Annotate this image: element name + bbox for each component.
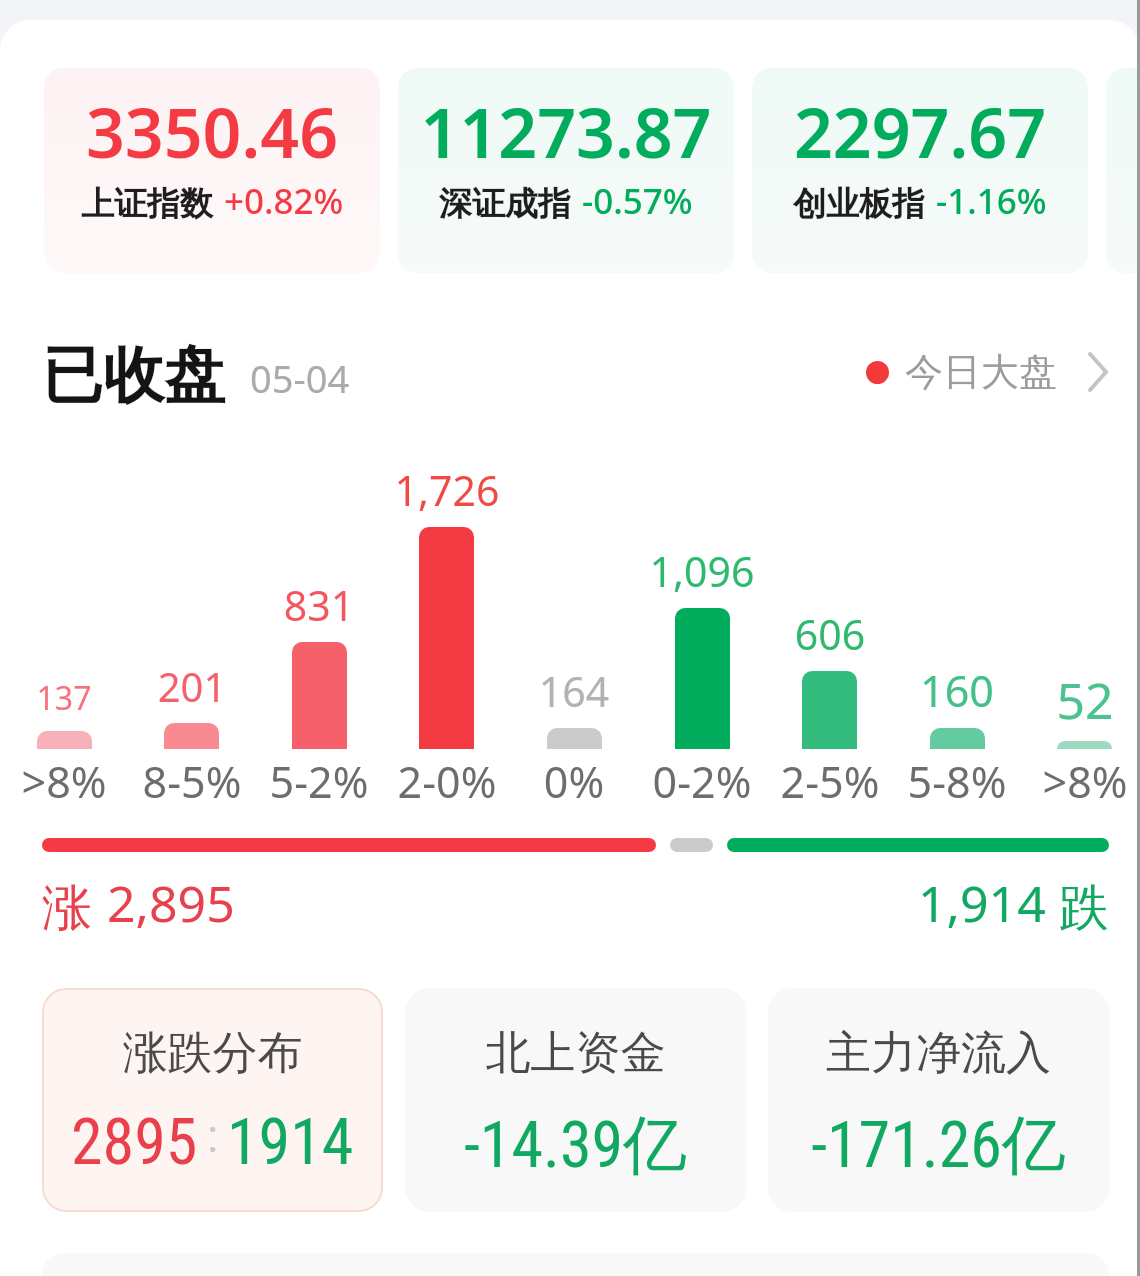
staticText: 涨 (42, 877, 92, 940)
staticText: -0.57% (582, 177, 693, 225)
staticText: 1914 (227, 1105, 354, 1180)
button[interactable] (1106, 68, 1140, 273)
staticText: 160 (882, 661, 1032, 720)
staticText: >8% (1010, 752, 1140, 811)
button[interactable]: 北上资金 (405, 988, 746, 1212)
staticText: 1,914 (918, 869, 1046, 937)
staticText: 主力净流入 (768, 1025, 1109, 1082)
staticText: 0% (499, 752, 649, 811)
staticText: 1,096 (627, 543, 777, 599)
staticText: : (207, 1109, 218, 1163)
staticText: 5-8% (882, 752, 1032, 811)
other: 今日大盘 (1088, 352, 1108, 392)
staticText: 831 (244, 577, 394, 633)
staticText: +0.82% (224, 177, 344, 225)
button[interactable]: 今日大盘 (866, 347, 1108, 397)
button[interactable]: 2297.67 (752, 68, 1088, 273)
button[interactable]: 涨跌分布 (42, 988, 383, 1212)
staticText: 2297.67 (752, 85, 1088, 178)
staticText: 2-0% (372, 752, 522, 811)
staticText: 已收盘 (42, 337, 225, 414)
staticText: 上证指数 (81, 183, 213, 225)
staticText: 0-2% (627, 752, 777, 811)
staticText: 137 (0, 676, 139, 720)
staticText: 8-5% (117, 752, 267, 811)
staticText: -1.16% (936, 177, 1047, 225)
button[interactable]: 主力净流入 (768, 988, 1109, 1212)
staticText: 2895 (71, 1105, 198, 1180)
staticText: 深证成指 (439, 183, 571, 225)
staticText: 创业板指 (793, 183, 925, 225)
button[interactable]: 11273.87 (398, 68, 734, 273)
staticText: 今日大盘 (905, 348, 1057, 396)
staticText: 201 (117, 659, 267, 713)
staticText: >8% (0, 752, 139, 811)
staticText: 5-2% (244, 752, 394, 811)
staticText: 52 (1010, 666, 1140, 734)
staticText: 2,895 (107, 869, 235, 937)
staticText: 164 (499, 663, 649, 719)
staticText: 北上资金 (405, 1025, 746, 1082)
staticText: 跌 (1059, 877, 1109, 940)
staticText: -171.26亿 (768, 1105, 1109, 1186)
staticText: 3350.46 (44, 85, 380, 178)
staticText: 606 (755, 606, 905, 662)
staticText: 2-5% (755, 752, 905, 811)
staticText: 涨跌分布 (42, 1025, 383, 1082)
staticText: 11273.87 (398, 85, 734, 178)
staticText: 05-04 (250, 352, 350, 404)
staticText: -14.39亿 (405, 1105, 746, 1186)
staticText: 1,726 (372, 462, 522, 518)
button[interactable]: 3350.46 (44, 68, 380, 273)
